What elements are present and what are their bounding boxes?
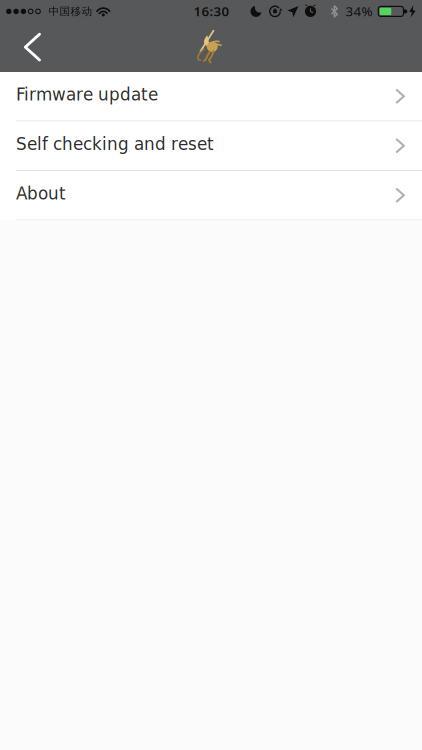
staticText: 34% bbox=[345, 2, 372, 20]
button[interactable]: Back bbox=[0, 27, 56, 67]
staticText: Self checking and reset bbox=[16, 134, 214, 154]
staticText: 16:30 bbox=[193, 2, 229, 20]
staticText: 中国移动 bbox=[48, 5, 92, 18]
button[interactable]: Firmware update bbox=[0, 72, 422, 120]
button[interactable]: About bbox=[0, 171, 422, 219]
staticText: Firmware update bbox=[16, 85, 158, 105]
staticText: About bbox=[16, 184, 66, 204]
button[interactable]: Self checking and reset bbox=[0, 121, 422, 170]
